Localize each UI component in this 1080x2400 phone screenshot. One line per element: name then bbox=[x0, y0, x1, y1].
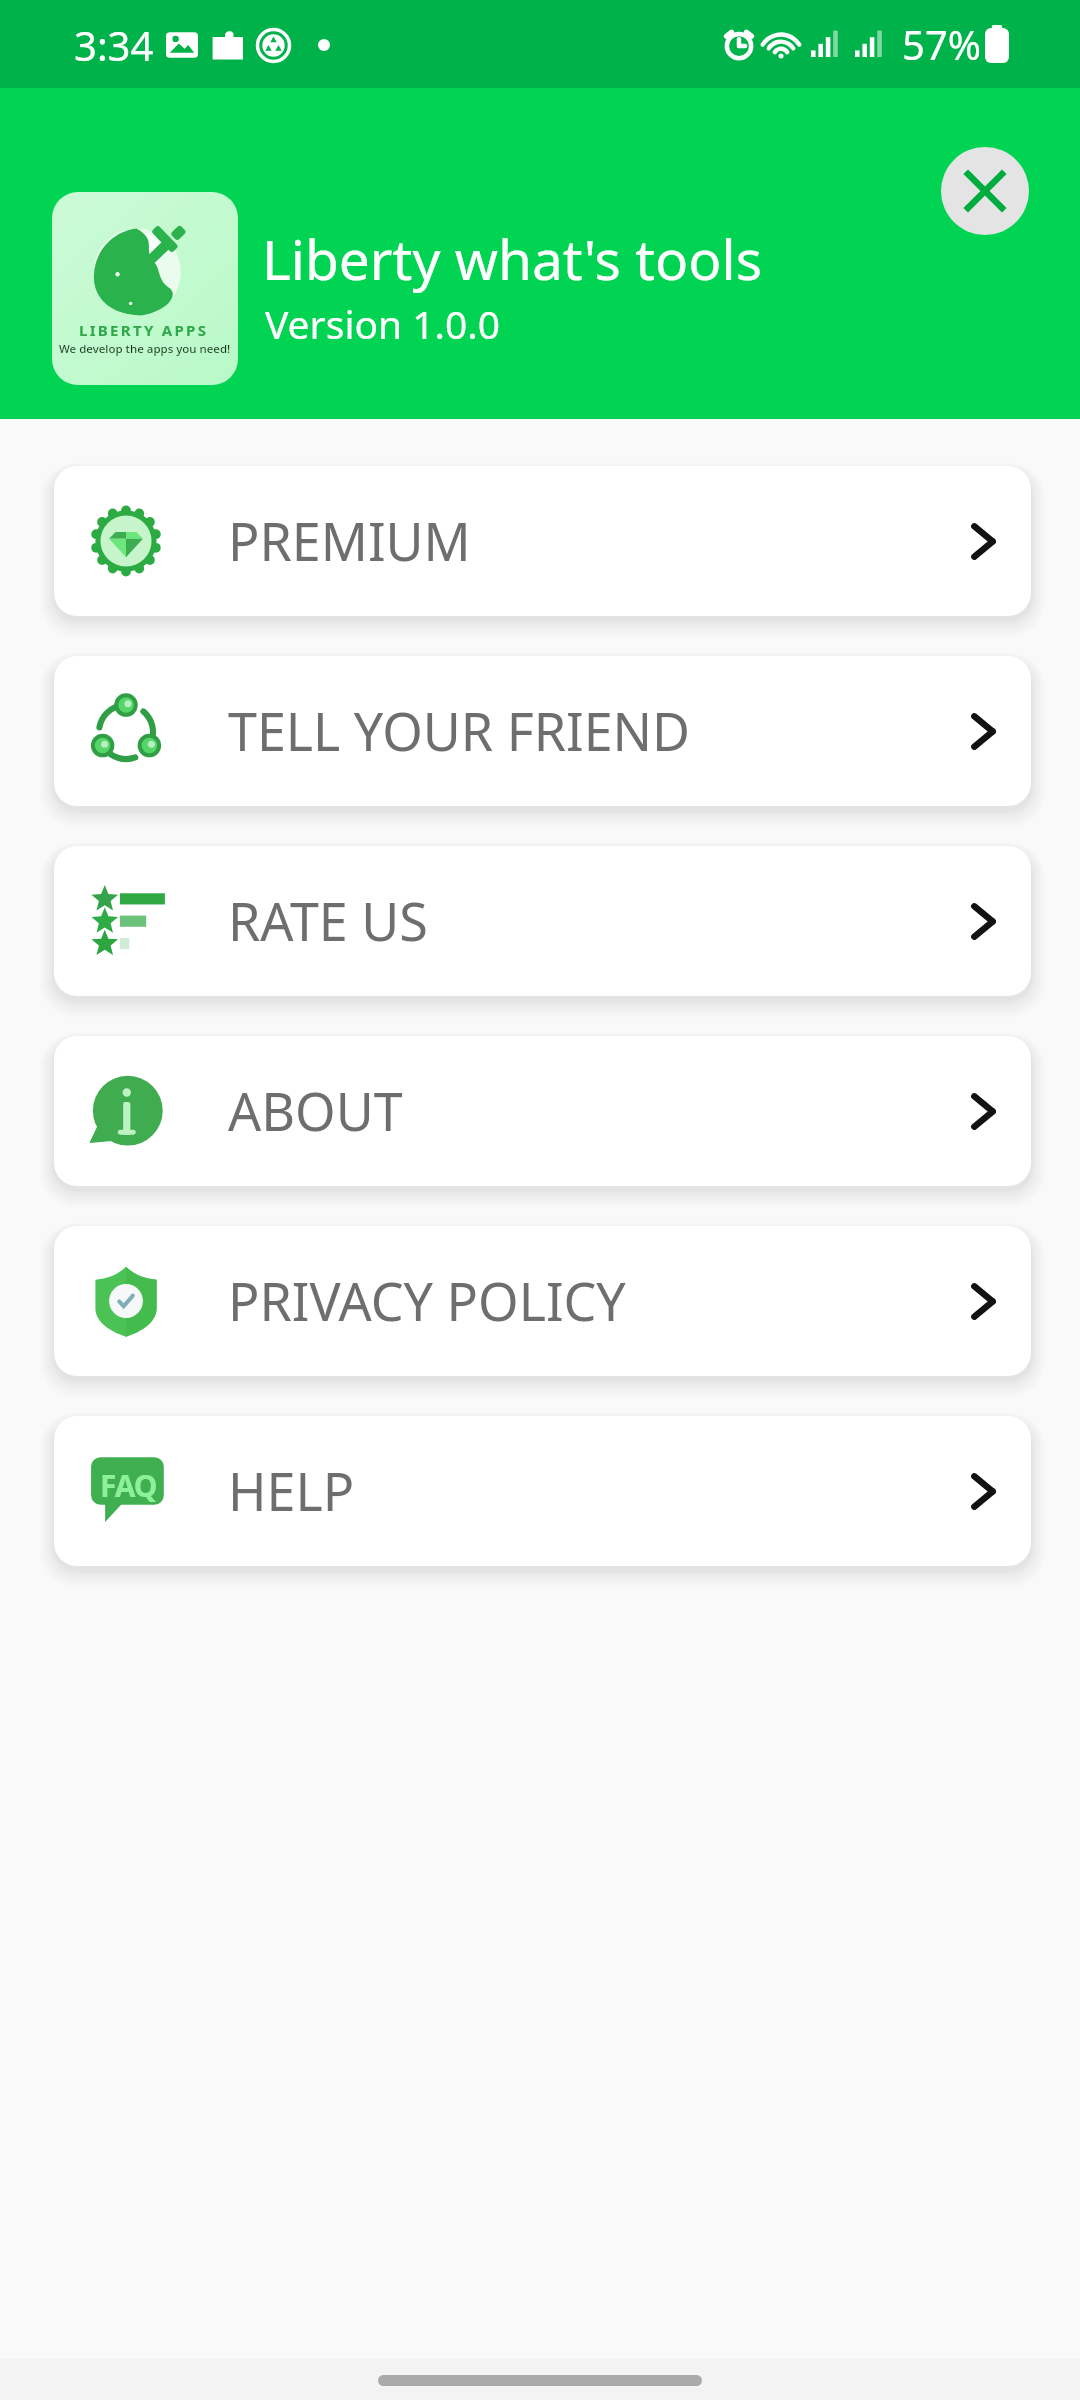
staticText: PRIVACY POLICY bbox=[228, 1265, 626, 1336]
button[interactable]: FAQ bbox=[54, 1416, 1031, 1566]
button[interactable]: ABOUT bbox=[54, 1036, 1031, 1186]
staticText: Version 1.0.0 bbox=[265, 297, 501, 350]
staticText: PREMIUM bbox=[228, 505, 471, 576]
button[interactable]: TELL YOUR FRIEND bbox=[54, 656, 1031, 806]
button[interactable]: PREMIUM bbox=[54, 466, 1031, 616]
staticText: ABOUT bbox=[228, 1075, 403, 1146]
button[interactable]: Close bbox=[941, 147, 1029, 235]
staticText: Liberty what's tools bbox=[262, 221, 763, 296]
staticText: HELP bbox=[228, 1455, 355, 1526]
staticText: LIBERTY APPS bbox=[79, 320, 209, 340]
staticText: TELL YOUR FRIEND bbox=[228, 695, 691, 766]
button[interactable]: RATE US bbox=[54, 846, 1031, 996]
staticText: RATE US bbox=[228, 885, 428, 956]
staticText: FAQ bbox=[100, 1465, 157, 1506]
staticText: 57% bbox=[902, 17, 981, 71]
staticText: We develop the apps you need! bbox=[59, 341, 231, 357]
button[interactable]: PRIVACY POLICY bbox=[54, 1226, 1031, 1376]
staticText: 3:34 bbox=[74, 18, 154, 72]
